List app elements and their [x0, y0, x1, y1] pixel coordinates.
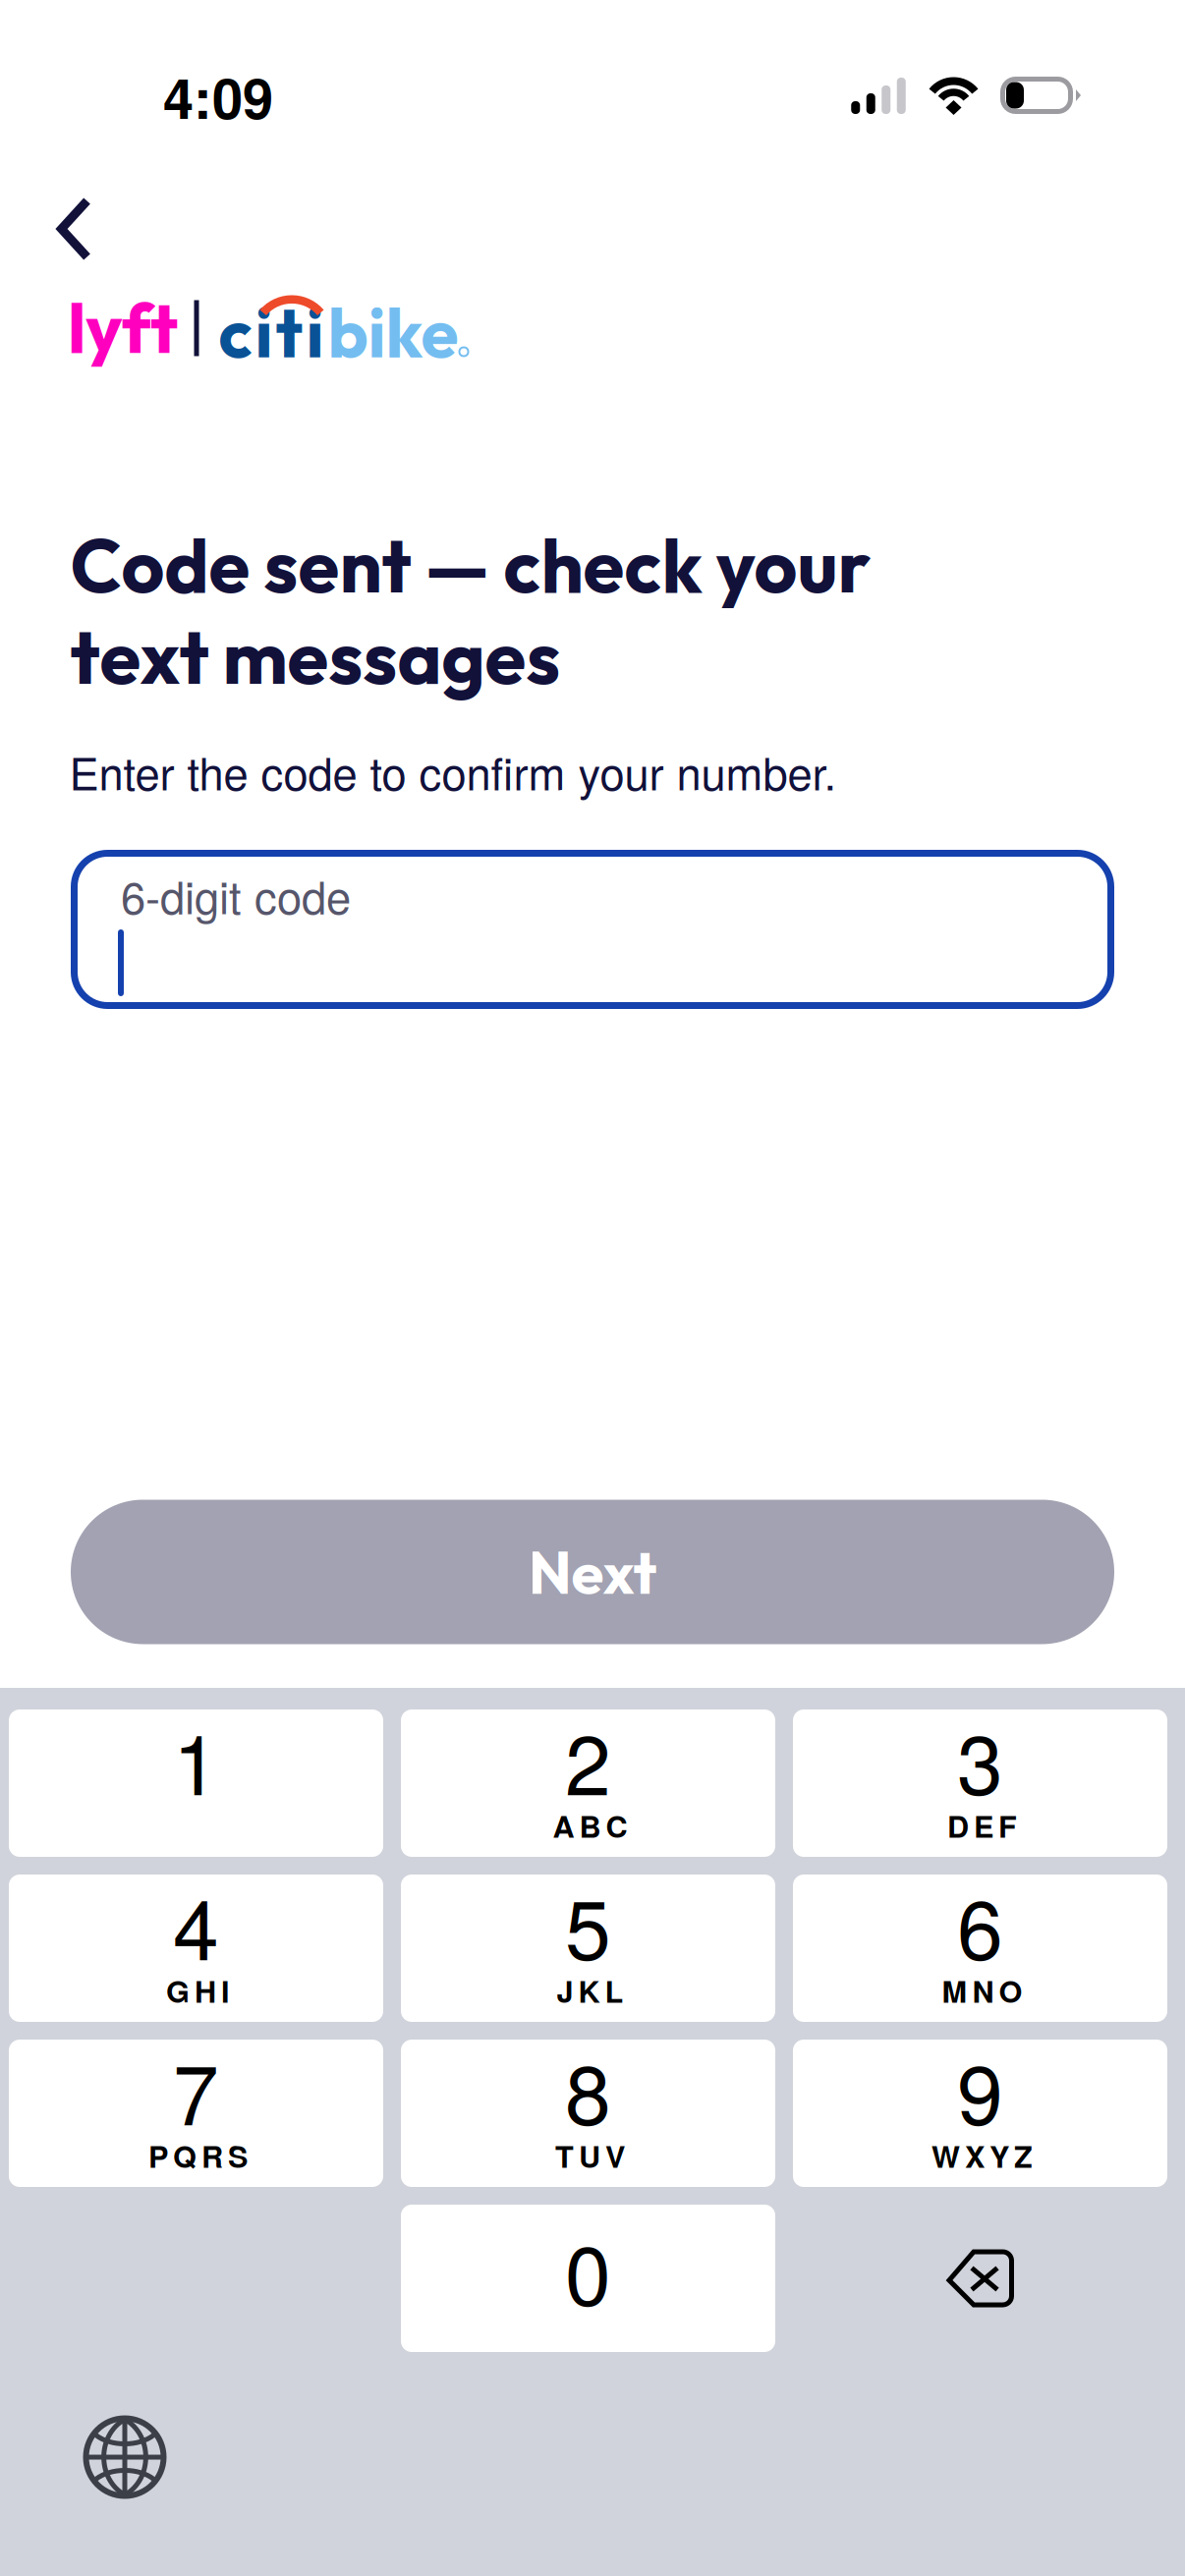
- button[interactable]: 1: [9, 1709, 383, 1857]
- staticText: DEF: [947, 1804, 1017, 1847]
- button[interactable]: 9: [793, 2040, 1167, 2187]
- button[interactable]: Next keyboard: [66, 2398, 184, 2516]
- staticText: bike: [328, 289, 458, 375]
- button[interactable]: 7: [9, 2040, 383, 2187]
- staticText: ABC: [553, 1804, 627, 1847]
- staticText: 6-digit code: [121, 863, 351, 927]
- button[interactable]: 8: [401, 2040, 775, 2187]
- staticText: JKL: [557, 1969, 623, 2012]
- staticText: 4: [173, 1866, 219, 1984]
- staticText: 4:09: [163, 57, 273, 136]
- button[interactable]: 0: [401, 2205, 775, 2352]
- staticText: 8: [565, 2031, 611, 2149]
- button[interactable]: Delete: [793, 2205, 1167, 2352]
- button[interactable]: 3: [793, 1709, 1167, 1857]
- button[interactable]: 6: [793, 1875, 1167, 2022]
- staticText: 1: [173, 1701, 219, 1819]
- staticText: Enter the code to confirm your number.: [69, 739, 837, 803]
- staticText: 2: [565, 1701, 611, 1819]
- staticText: MNO: [942, 1969, 1022, 2012]
- staticText: 9: [957, 2031, 1003, 2149]
- staticText: 3: [957, 1701, 1003, 1819]
- staticText: Code sent — check your: [70, 518, 871, 612]
- button[interactable]: Next: [71, 1500, 1114, 1644]
- staticText: 5: [565, 1866, 611, 1984]
- staticText: 7: [173, 2031, 219, 2149]
- button[interactable]: 5: [401, 1875, 775, 2022]
- button[interactable]: 2: [401, 1709, 775, 1857]
- staticText: 6: [957, 1866, 1003, 1984]
- staticText: WXYZ: [931, 2134, 1033, 2177]
- staticText: citi: [219, 289, 324, 375]
- button[interactable]: 4: [9, 1875, 383, 2022]
- button[interactable]: 6-digit code: [71, 850, 1114, 1009]
- staticText: TUV: [555, 2134, 625, 2177]
- staticText: 0: [565, 2211, 611, 2330]
- staticText: PQRS: [148, 2134, 248, 2177]
- button[interactable]: Back: [12, 165, 137, 293]
- staticText: Next: [528, 1535, 657, 1609]
- staticText: lyft: [68, 283, 178, 371]
- staticText: GHI: [166, 1969, 230, 2012]
- staticText: text messages: [70, 609, 561, 703]
